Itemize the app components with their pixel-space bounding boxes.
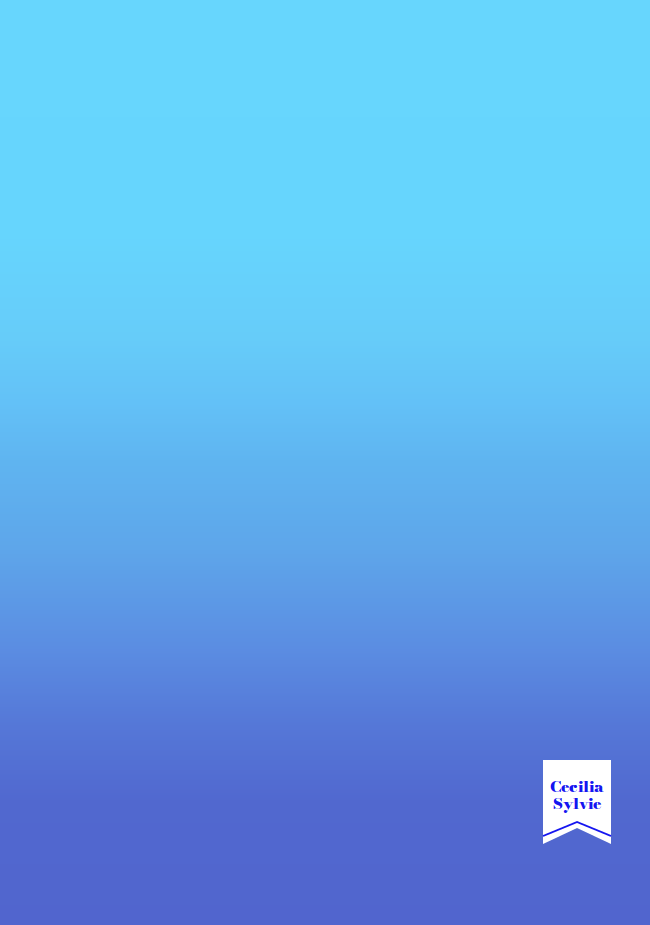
staticText: Sylvie [553,791,601,815]
staticText: Cecilia [550,774,604,798]
button[interactable]: Cecilia Sylvie [543,760,611,844]
